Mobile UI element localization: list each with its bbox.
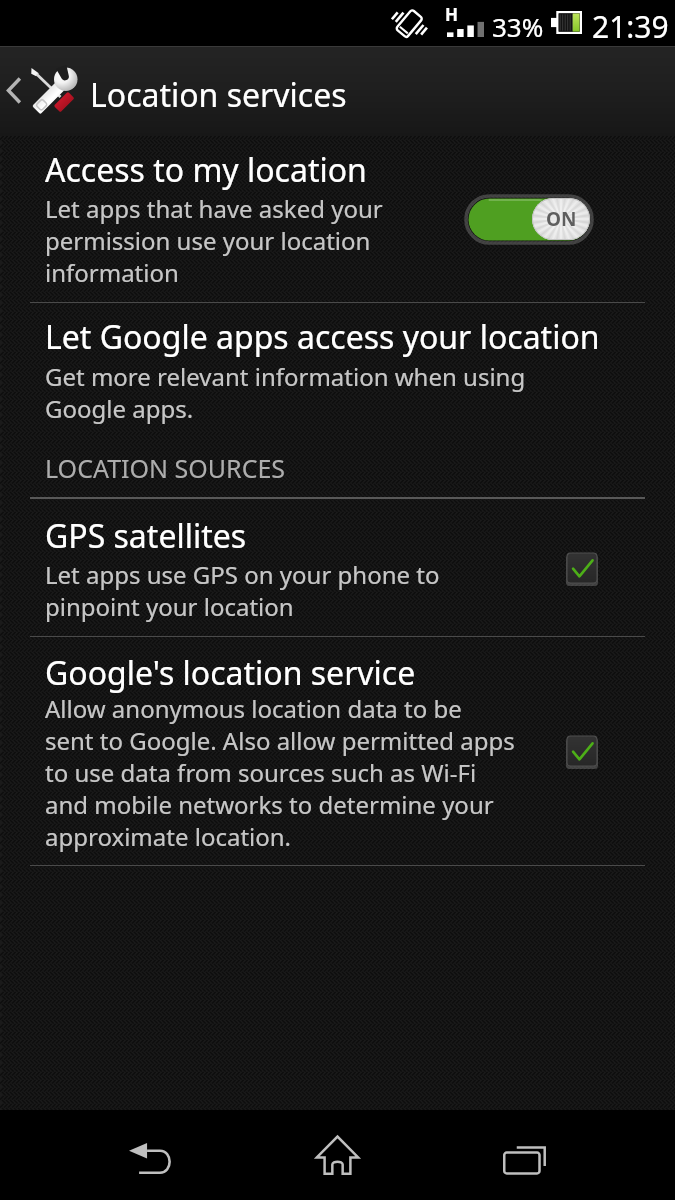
staticText: LOCATION SOURCES (45, 451, 286, 485)
staticText: 33% (492, 9, 544, 44)
staticText: 21:39 (592, 6, 669, 47)
staticText: Let Google apps access your location (45, 315, 600, 359)
button[interactable]: Home (288, 1110, 388, 1200)
staticText: H (445, 3, 459, 26)
button[interactable]: Checked (566, 736, 610, 780)
staticText: Let apps that have asked your permission… (45, 192, 383, 289)
button[interactable] (0, 512, 675, 636)
staticText: ON (546, 206, 577, 232)
button[interactable]: Back (100, 1110, 200, 1200)
staticText: Access to my location (45, 148, 367, 192)
staticText: Allow anonymous location data to be sent… (45, 692, 515, 853)
button[interactable] (0, 646, 675, 865)
staticText: GPS satellites (45, 514, 247, 558)
button[interactable]: Recent apps (475, 1110, 575, 1200)
button[interactable]: Access to my location, on (466, 196, 592, 243)
button[interactable] (0, 146, 675, 303)
button[interactable]: Checked (566, 553, 610, 597)
staticText: Location services (90, 73, 347, 117)
button[interactable] (0, 314, 675, 440)
staticText: Let apps use GPS on your phone to pinpoi… (45, 558, 440, 623)
staticText: Get more relevant information when using… (45, 360, 526, 425)
staticText: Google's location service (45, 651, 416, 695)
button[interactable]: Location services, navigate up (0, 46, 675, 136)
